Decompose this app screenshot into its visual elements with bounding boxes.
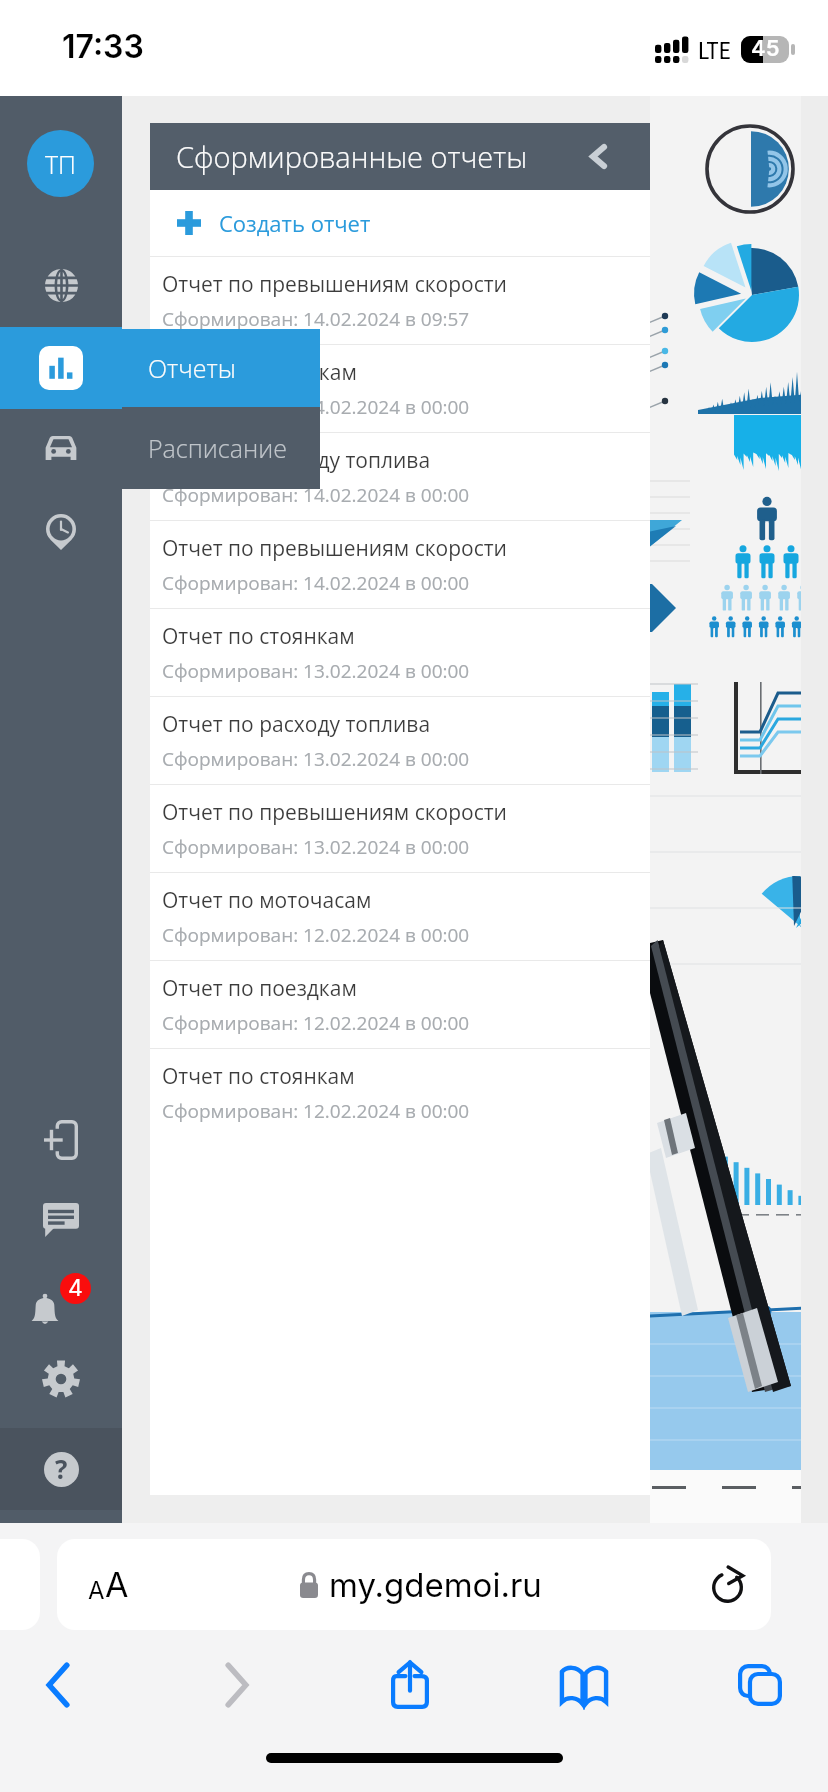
staticText: Сформирован: 12.02.2024 в 00:00 bbox=[162, 922, 470, 948]
button[interactable]: Отчет по стоянкам bbox=[150, 609, 650, 696]
button[interactable]: Отчет по превышениям скорости bbox=[150, 257, 650, 344]
staticText: Отчет по расходу топлива bbox=[162, 710, 431, 739]
staticText: Сформирован: 14.02.2024 в 00:00 bbox=[162, 394, 470, 420]
button[interactable]: Помощь bbox=[0, 1428, 122, 1510]
staticText: Отчет по стоянкам bbox=[162, 622, 355, 651]
staticText: my.gdemoi.ru bbox=[329, 1565, 542, 1605]
button[interactable]: Отчет по расходу топлива bbox=[150, 433, 650, 520]
staticText: Отчет по моточасам bbox=[162, 886, 372, 915]
button[interactable]: Вкладки bbox=[704, 1630, 816, 1740]
staticText: ТП bbox=[45, 147, 76, 181]
button[interactable]: Отчет по превышениям скорости bbox=[150, 785, 650, 872]
button[interactable]: Вперед bbox=[181, 1630, 293, 1740]
button[interactable]: Карта bbox=[0, 244, 122, 326]
staticText: 4 bbox=[68, 1274, 83, 1302]
staticText: Сформирован: 14.02.2024 в 00:00 bbox=[162, 482, 470, 508]
button[interactable]: Закладки bbox=[528, 1630, 640, 1740]
button[interactable]: Обновить bbox=[683, 1539, 771, 1630]
staticText: Отчет по поездкам bbox=[162, 974, 357, 1003]
staticText: Отчет по превышениям скорости bbox=[162, 798, 507, 827]
button[interactable]: Размер текста bbox=[57, 1539, 159, 1630]
button[interactable]: Назад bbox=[2, 1630, 114, 1740]
staticText: Расписание bbox=[148, 431, 287, 465]
staticText: A bbox=[88, 1576, 105, 1605]
staticText: Сформирован: 13.02.2024 в 00:00 bbox=[162, 746, 470, 772]
button[interactable]: Размер текста bbox=[57, 1539, 771, 1630]
staticText: Создать отчет bbox=[219, 208, 371, 238]
staticText: LTE bbox=[698, 37, 731, 65]
staticText: Сформированные отчеты bbox=[176, 137, 528, 176]
staticText: 17:33 bbox=[62, 27, 144, 66]
staticText: Отчет по стоянкам bbox=[162, 1062, 355, 1091]
button[interactable]: Создать отчет bbox=[150, 190, 650, 256]
button[interactable]: Расписание bbox=[122, 407, 320, 489]
button[interactable]: Отчет по расходу топлива bbox=[150, 697, 650, 784]
staticText: Сформирован: 13.02.2024 в 00:00 bbox=[162, 658, 470, 684]
staticText: Сформирован: 12.02.2024 в 00:00 bbox=[162, 1098, 470, 1124]
staticText: Сформирован: 14.02.2024 в 00:00 bbox=[162, 570, 470, 596]
button[interactable]: Отчеты bbox=[122, 329, 320, 407]
button[interactable]: Поделиться bbox=[354, 1630, 466, 1740]
button[interactable]: Отчеты bbox=[0, 327, 122, 409]
button[interactable]: История bbox=[0, 491, 122, 573]
button[interactable]: ТП bbox=[27, 130, 94, 197]
staticText: Сформирован: 14.02.2024 в 09:57 bbox=[162, 306, 470, 332]
staticText: A bbox=[105, 1564, 129, 1605]
button[interactable]: Уведомления bbox=[0, 1258, 122, 1340]
staticText: Отчет по превышениям скорости bbox=[162, 270, 507, 299]
button[interactable]: Отчет по стоянкам bbox=[150, 1049, 650, 1136]
button[interactable]: Отчет по моточасам bbox=[150, 873, 650, 960]
staticText: Сформирован: 13.02.2024 в 00:00 bbox=[162, 834, 470, 860]
button[interactable]: Транспорт bbox=[0, 409, 122, 491]
button[interactable]: Отчет по поездкам bbox=[150, 345, 650, 432]
button[interactable]: Свернуть bbox=[546, 123, 650, 190]
button[interactable]: Отчет по превышениям скорости bbox=[150, 521, 650, 608]
button[interactable]: Отчет по поездкам bbox=[150, 961, 650, 1048]
staticText: Сформирован: 12.02.2024 в 00:00 bbox=[162, 1010, 470, 1036]
button[interactable]: Добавить устройство bbox=[0, 1099, 122, 1181]
staticText: Отчет по поездкам bbox=[162, 358, 357, 387]
staticText: Отчеты bbox=[148, 351, 236, 385]
button[interactable]: Настройки bbox=[0, 1338, 122, 1420]
staticText: Отчет по расходу топлива bbox=[162, 446, 431, 475]
button[interactable]: Сообщения bbox=[0, 1179, 122, 1261]
staticText: ? bbox=[55, 1452, 68, 1486]
staticText: 45 bbox=[751, 36, 780, 62]
staticText: Отчет по превышениям скорости bbox=[162, 534, 507, 563]
